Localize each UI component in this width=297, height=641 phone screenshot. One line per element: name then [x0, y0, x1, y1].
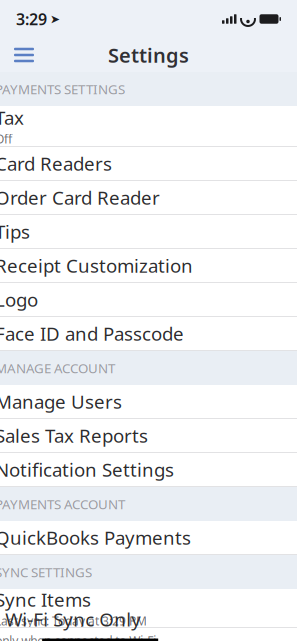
button[interactable]: Face ID and Passcode: [0, 317, 297, 351]
staticText: Sync only when connected to Wi-Fi: [0, 633, 156, 641]
button[interactable]: Order Card Reader: [0, 181, 297, 215]
button[interactable]: Receipt Customization: [0, 249, 297, 283]
button[interactable]: Menu: [6, 40, 42, 70]
staticText: Notification Settings: [0, 457, 174, 482]
staticText: ➤: [50, 12, 60, 26]
button[interactable]: Card Readers: [0, 147, 297, 181]
staticText: Tax: [0, 105, 24, 130]
staticText: Use Wi-Fi Sync Only: [0, 607, 141, 632]
button[interactable]: Tips: [0, 215, 297, 249]
staticText: 3:29: [16, 8, 47, 30]
staticText: MANAGE ACCOUNT: [0, 359, 115, 377]
button[interactable]: Notification Settings: [0, 453, 297, 487]
staticText: Off: [0, 131, 12, 147]
staticText: Receipt Customization: [0, 253, 193, 278]
staticText: Sales Tax Reports: [0, 423, 148, 448]
button[interactable]: Sales Tax Reports: [0, 419, 297, 453]
staticText: SYNC SETTINGS: [0, 563, 92, 581]
staticText: Manage Users: [0, 389, 122, 414]
staticText: Logo: [0, 287, 38, 312]
button[interactable]: Manage Users: [0, 385, 297, 419]
staticText: PAYMENTS ACCOUNT: [0, 495, 125, 513]
staticText: QuickBooks Payments: [0, 525, 191, 550]
staticText: Face ID and Passcode: [0, 321, 184, 346]
staticText: Card Readers: [0, 151, 112, 176]
button[interactable]: Logo: [0, 283, 297, 317]
button[interactable]: Tax: [0, 106, 297, 147]
button[interactable]: Sync Items: [0, 589, 297, 628]
staticText: Tips: [0, 219, 30, 244]
staticText: Last sync: Today at 3:29 PM: [0, 613, 147, 629]
staticText: Order Card Reader: [0, 185, 160, 210]
button[interactable]: Use Wi-Fi Sync Only: [0, 628, 297, 641]
staticText: Sync Items: [0, 587, 91, 612]
staticText: PAYMENTS SETTINGS: [0, 80, 125, 98]
staticText: Settings: [108, 42, 189, 68]
button[interactable]: QuickBooks Payments: [0, 521, 297, 555]
